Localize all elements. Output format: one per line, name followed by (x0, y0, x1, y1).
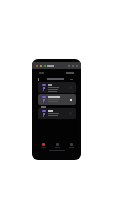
button[interactable]: Back (36, 76, 41, 82)
button[interactable] (38, 82, 76, 93)
button[interactable] (38, 94, 76, 105)
button[interactable]: Settings (64, 141, 78, 149)
button[interactable]: Messages (50, 141, 64, 149)
button[interactable]: Notifications (36, 141, 50, 149)
button[interactable]: More options (68, 76, 74, 82)
button[interactable] (38, 108, 76, 119)
